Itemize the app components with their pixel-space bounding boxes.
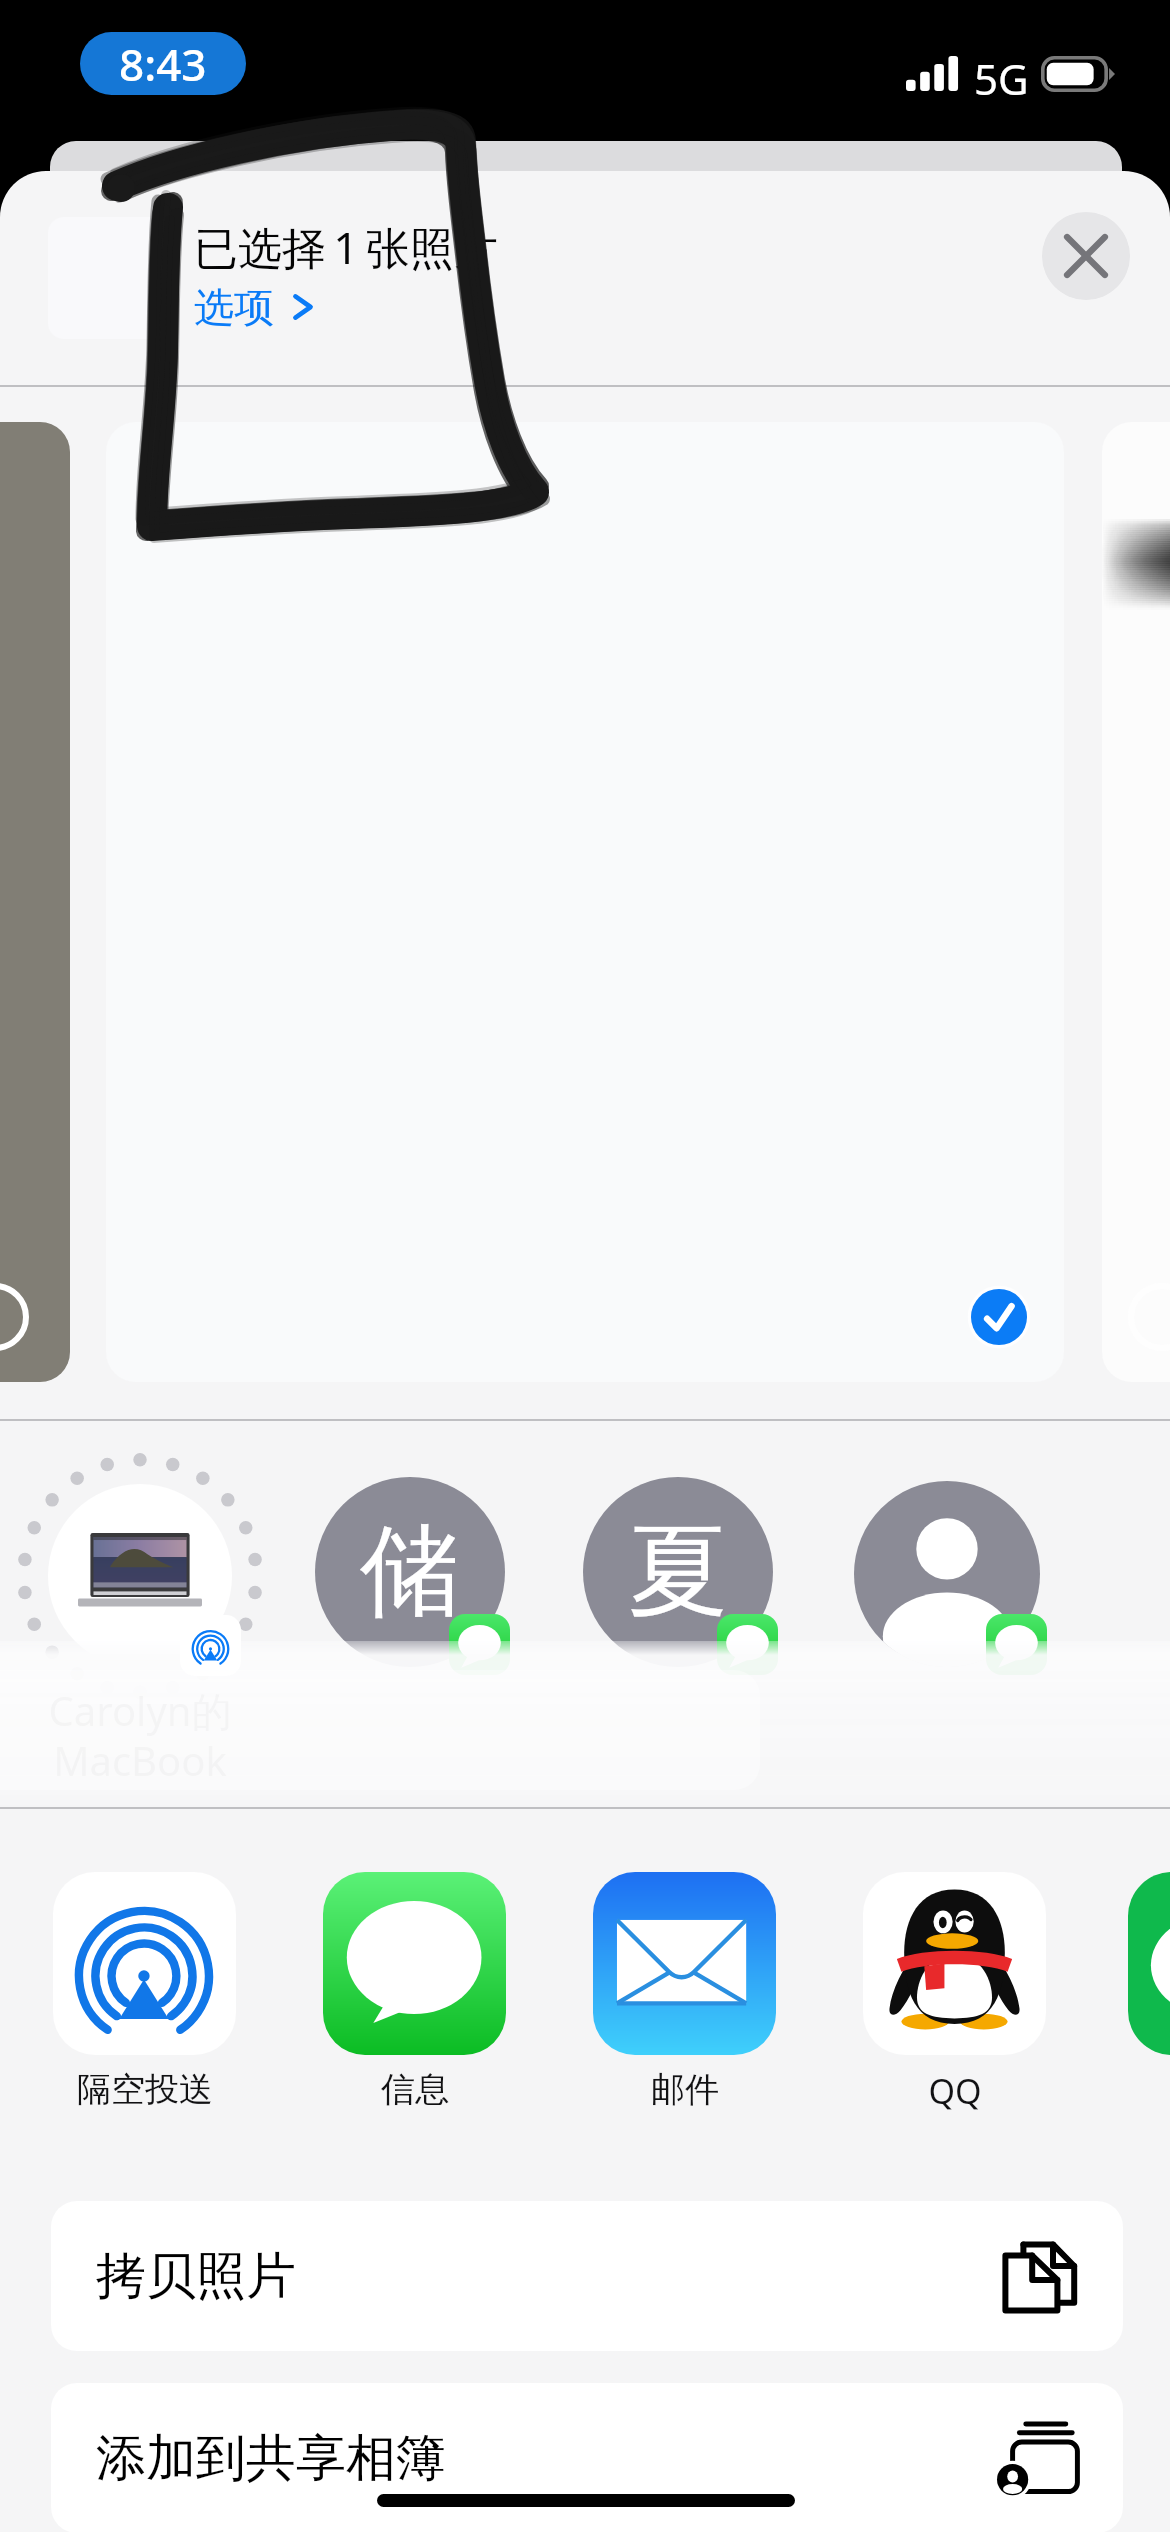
staticText: 5G [974,50,1029,107]
button[interactable]: 邮件 [593,1872,776,2111]
button[interactable]: WeChat [1128,1872,1170,2055]
staticText: QQ [928,2068,982,2114]
staticText: 已选择 1 张照片 [194,217,498,277]
button[interactable]: 夏 [583,1477,773,1667]
staticText: 拷贝照片 [96,2245,296,2308]
button[interactable]: 储 [315,1477,505,1667]
button[interactable]: Close [1042,212,1130,300]
staticText: 邮件 [651,2068,719,2111]
button[interactable]: Contact [854,1481,1040,1667]
staticText: 储 [360,1509,460,1635]
button[interactable]: AirDrop [180,1615,241,1676]
button[interactable]: AirDrop to Carolyn的MacBook [15,1451,265,1701]
staticText: 隔空投送 [77,2068,213,2111]
staticText: 信息 [381,2068,449,2111]
staticText: 选项 [194,282,274,332]
button[interactable]: 信息 [323,1872,506,2111]
staticText: 夏 [628,1509,728,1635]
button[interactable]: 隔空投送 [53,1872,236,2111]
button[interactable]: 拷贝照片 [51,2201,1123,2351]
button[interactable]: QQ [863,1872,1046,2114]
button[interactable]: 添加到共享相簿 [51,2383,1123,2532]
button[interactable]: 选项 [194,282,312,332]
staticText: 添加到共享相簿 [96,2427,446,2490]
button[interactable]: Selected photo [106,422,1064,1382]
staticText: 8:43 [119,34,207,94]
